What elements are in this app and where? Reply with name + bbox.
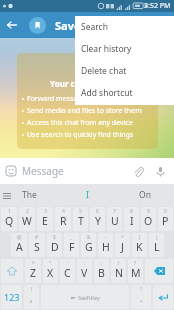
staticText: $	[53, 234, 56, 241]
staticText: 9	[147, 208, 150, 215]
button[interactable]: Search	[75, 16, 174, 38]
button[interactable]: _	[63, 232, 80, 258]
staticText: Delete chat	[81, 65, 127, 77]
staticText: 1	[8, 208, 11, 215]
staticText: .	[140, 292, 143, 304]
button[interactable]: )	[148, 232, 165, 258]
button[interactable]: 123	[0, 284, 23, 310]
button[interactable]: 2	[18, 206, 36, 232]
staticText: A	[16, 240, 23, 254]
staticText: T	[78, 214, 84, 228]
staticText: I	[130, 214, 134, 228]
button[interactable]: +	[114, 232, 131, 258]
staticText: S	[34, 240, 40, 254]
button[interactable]: 9	[140, 206, 157, 232]
staticText: @	[17, 234, 22, 241]
staticText: Send media and files to store them	[27, 106, 142, 116]
staticText: On	[139, 189, 151, 201]
staticText: W	[22, 214, 32, 228]
staticText: 123	[4, 291, 20, 303]
button[interactable]: -	[97, 232, 114, 258]
staticText: Y	[95, 214, 101, 228]
button[interactable]: Backspace	[144, 258, 174, 284]
button[interactable]: Back	[0, 12, 24, 38]
staticText: Message	[22, 164, 64, 178]
staticText: Saved Messages	[55, 18, 144, 33]
staticText: Z	[30, 266, 37, 280]
staticText: P	[162, 214, 169, 228]
button[interactable]: '	[59, 258, 76, 284]
button[interactable]: (	[131, 232, 148, 258]
staticText: N	[115, 266, 123, 280]
staticText: Q	[5, 214, 14, 228]
button[interactable]: Shift	[0, 258, 24, 284]
staticText: G	[85, 240, 93, 254]
button[interactable]: ?	[130, 284, 152, 310]
button[interactable]: &	[80, 232, 97, 258]
button[interactable]: Delete chat	[75, 60, 174, 82]
button[interactable]: $	[46, 232, 63, 258]
button[interactable]: !	[23, 284, 40, 310]
button[interactable]: ;	[93, 258, 110, 284]
staticText: Forward messages here to save them	[27, 94, 150, 104]
button[interactable]: Enter	[152, 284, 174, 310]
staticText: )	[156, 234, 158, 241]
staticText: Clear history	[81, 43, 132, 55]
button[interactable]: 4	[54, 206, 72, 232]
button[interactable]: Space	[40, 284, 130, 310]
staticText: E	[42, 214, 48, 228]
staticText: 7	[113, 208, 116, 215]
staticText: '	[67, 260, 69, 267]
staticText: Your cloud storage	[17, 78, 158, 89]
staticText: 2	[26, 208, 29, 215]
staticText: 4	[62, 208, 65, 215]
staticText: F	[69, 240, 75, 254]
staticText: Search	[81, 21, 108, 33]
button[interactable]: I	[58, 184, 116, 206]
button[interactable]: Add shortcut	[75, 82, 174, 104]
button[interactable]: Attach	[128, 158, 149, 184]
button[interactable]: Emoji	[0, 158, 22, 184]
button[interactable]: @	[10, 232, 28, 258]
staticText: Use search to quickly find things	[27, 130, 134, 140]
button[interactable]: On	[116, 184, 174, 206]
button[interactable]: :	[76, 258, 93, 284]
staticText: M	[131, 266, 141, 280]
staticText: H	[102, 240, 110, 254]
staticText: R	[60, 214, 67, 228]
staticText: &	[87, 234, 91, 241]
button[interactable]: "	[42, 258, 59, 284]
staticText: I	[86, 189, 89, 201]
staticText: _	[70, 234, 73, 241]
button[interactable]: 8	[123, 206, 140, 232]
button[interactable]: ?	[127, 258, 144, 284]
button[interactable]: 1	[0, 206, 18, 232]
staticText: !	[118, 260, 120, 267]
button[interactable]: 7	[106, 206, 123, 232]
staticText: ?	[140, 286, 143, 293]
staticText: "	[49, 260, 52, 267]
staticText: ;	[101, 260, 103, 267]
staticText: 0	[164, 208, 167, 215]
button[interactable]: 5	[72, 206, 89, 232]
button[interactable]: Clear history	[75, 38, 174, 60]
staticText: D	[51, 240, 59, 254]
staticText: SwiftKey	[78, 294, 100, 301]
staticText: B	[98, 266, 105, 280]
staticText: Add shortcut	[81, 87, 133, 99]
staticText: O	[144, 214, 153, 228]
button[interactable]: Voice message	[149, 158, 171, 184]
staticText: 5	[79, 208, 82, 215]
button[interactable]: #	[28, 232, 46, 258]
button[interactable]: Keyboard menu	[0, 184, 14, 206]
button[interactable]: 3	[36, 206, 54, 232]
staticText: :	[84, 260, 86, 267]
staticText: C	[64, 266, 71, 280]
button[interactable]: 0	[157, 206, 174, 232]
button[interactable]: !	[110, 258, 127, 284]
staticText: 3:52 PM	[144, 1, 171, 11]
button[interactable]: 6	[89, 206, 106, 232]
button[interactable]: *	[24, 258, 42, 284]
button[interactable]: The	[0, 184, 58, 206]
staticText: ?	[134, 260, 137, 267]
